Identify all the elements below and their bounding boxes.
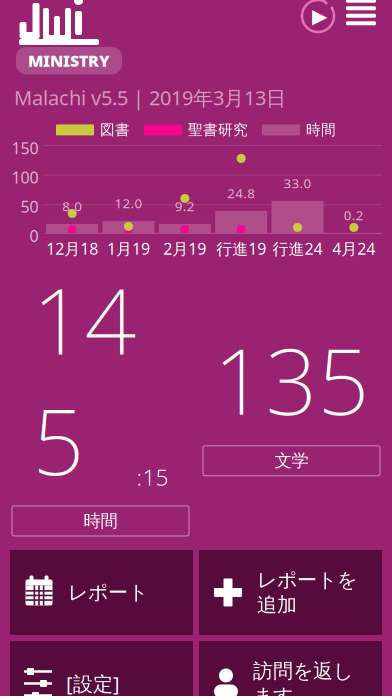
staticText: 12月18 [46, 238, 98, 259]
staticText: 0.2 [344, 206, 364, 224]
staticText: 行進19 [216, 238, 266, 259]
staticText: ▶ [312, 5, 327, 27]
staticText: 145 [32, 259, 136, 500]
button[interactable]: 時間 [12, 506, 189, 536]
button[interactable]: 文学 [203, 446, 380, 476]
staticText: 図書 [100, 121, 130, 139]
staticText: 150 [11, 137, 38, 159]
staticText: 12.0 [114, 194, 142, 212]
staticText: 2月19 [163, 238, 206, 259]
staticText: 聖書研究 [188, 121, 248, 139]
staticText: レポートを追加 [257, 568, 357, 617]
button[interactable]: Play timer [300, 0, 336, 34]
staticText: 行進24 [272, 238, 322, 259]
button[interactable]: レポートを追加 [199, 550, 382, 635]
button[interactable]: Menu [346, 0, 376, 26]
staticText: 時間 [83, 510, 117, 532]
button[interactable]: レポート [10, 550, 193, 635]
staticText: 0 [29, 225, 38, 246]
staticText: 訪問を返します。 [253, 659, 353, 696]
staticText: 時間 [306, 121, 336, 139]
staticText: 9.2 [175, 197, 195, 215]
staticText: 文学 [274, 450, 308, 471]
staticText: 4月24 [332, 238, 375, 259]
staticText: 50 [20, 196, 38, 217]
staticText: 1月19 [107, 238, 150, 259]
button[interactable]: [設定] [10, 641, 193, 696]
staticText: レポート [68, 580, 148, 605]
staticText: 24.8 [227, 184, 255, 202]
staticText: 135 [213, 319, 369, 440]
button[interactable]: 訪問を返します。 [199, 641, 382, 696]
staticText: :15 [136, 462, 168, 492]
staticText: 33.0 [283, 174, 311, 192]
staticText: MINISTRY [28, 50, 110, 71]
staticText: [設定] [66, 670, 120, 696]
staticText: 100 [11, 167, 38, 188]
staticText: 8.0 [62, 197, 82, 215]
staticText: Malachi v5.5 | 2019年3月13日 [14, 84, 286, 111]
